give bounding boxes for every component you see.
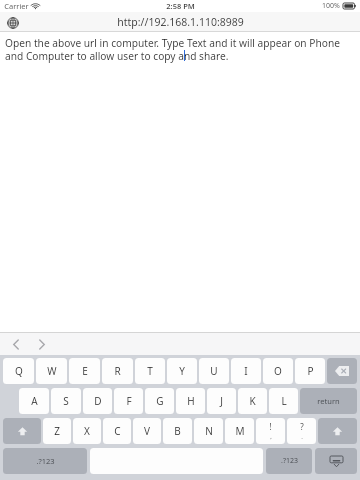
staticText: A — [31, 394, 38, 408]
staticText: O — [274, 364, 282, 378]
button[interactable]: V — [133, 418, 161, 444]
staticText: C — [114, 424, 121, 438]
staticText: I — [244, 364, 248, 378]
button[interactable]: U — [199, 358, 229, 384]
button[interactable]: http://192.168.1.110:8989 — [117, 15, 244, 29]
staticText: J — [220, 394, 223, 408]
button[interactable]: J — [207, 388, 236, 414]
button[interactable]: I — [231, 358, 261, 384]
button[interactable]: W — [36, 358, 67, 384]
button[interactable]: D — [83, 388, 112, 414]
staticText: X — [84, 424, 90, 438]
button[interactable]: return — [300, 388, 357, 414]
staticText: P — [307, 364, 314, 378]
button[interactable]: Z — [43, 418, 71, 444]
button[interactable]: K — [238, 388, 267, 414]
staticText: U — [210, 364, 218, 378]
button[interactable]: N — [194, 418, 223, 444]
button[interactable]: ! — [256, 418, 285, 444]
button[interactable]: S — [51, 388, 81, 414]
staticText: Z — [54, 424, 60, 438]
button[interactable]: R — [102, 358, 133, 384]
staticText: Open the above url in computer. Type Tex… — [5, 36, 352, 63]
button[interactable]: Open the above url in computer. Type Tex… — [0, 32, 360, 342]
button[interactable]: Page settings — [5, 15, 20, 30]
staticText: 2:58 PM — [166, 1, 195, 11]
button[interactable]: Q — [3, 358, 34, 384]
button[interactable]: X — [73, 418, 101, 444]
button[interactable]: M — [225, 418, 254, 444]
button[interactable]: F — [114, 388, 143, 414]
button[interactable]: G — [145, 388, 174, 414]
button[interactable]: E — [69, 358, 100, 384]
staticText: B — [174, 424, 181, 438]
staticText: Carrier — [4, 1, 29, 11]
staticText: N — [205, 424, 213, 438]
button[interactable]: O — [263, 358, 293, 384]
staticText: 100% — [322, 1, 340, 11]
staticText: , — [270, 433, 272, 441]
button[interactable]: Previous field — [6, 334, 26, 354]
button[interactable]: B — [163, 418, 192, 444]
staticText: Y — [179, 364, 185, 378]
button[interactable]: .?123 — [266, 448, 312, 474]
button[interactable]: ? — [287, 418, 316, 444]
button[interactable]: .?123 — [3, 448, 87, 474]
staticText: . — [301, 433, 303, 441]
button[interactable]: Hide keyboard — [315, 448, 357, 474]
staticText: D — [94, 394, 102, 408]
staticText: http://192.168.1.110:8989 — [117, 15, 244, 29]
button[interactable]: Next field — [32, 334, 52, 354]
staticText: H — [187, 394, 195, 408]
staticText: Q — [15, 364, 23, 378]
staticText: .?123 — [36, 456, 55, 466]
staticText: T — [147, 364, 153, 378]
button[interactable]: Backspace — [327, 358, 357, 384]
button[interactable]: H — [176, 388, 205, 414]
staticText: M — [235, 424, 245, 438]
button[interactable]: C — [103, 418, 131, 444]
staticText: V — [144, 424, 150, 438]
button[interactable]: A — [19, 388, 49, 414]
staticText: R — [114, 364, 121, 378]
staticText: W — [47, 364, 57, 378]
staticText: L — [281, 394, 287, 408]
button[interactable]: Shift — [318, 418, 357, 444]
staticText: return — [317, 396, 340, 406]
staticText: G — [156, 394, 164, 408]
button[interactable]: Y — [167, 358, 197, 384]
button[interactable]: L — [269, 388, 298, 414]
button[interactable]: T — [135, 358, 165, 384]
staticText: K — [249, 394, 256, 408]
staticText: F — [126, 394, 132, 408]
button[interactable]: Shift — [3, 418, 41, 444]
button[interactable]: P — [295, 358, 325, 384]
staticText: ? — [300, 421, 304, 432]
staticText: E — [82, 364, 88, 378]
staticText: ! — [269, 421, 272, 432]
staticText: S — [63, 394, 69, 408]
staticText: .?123 — [281, 456, 298, 466]
